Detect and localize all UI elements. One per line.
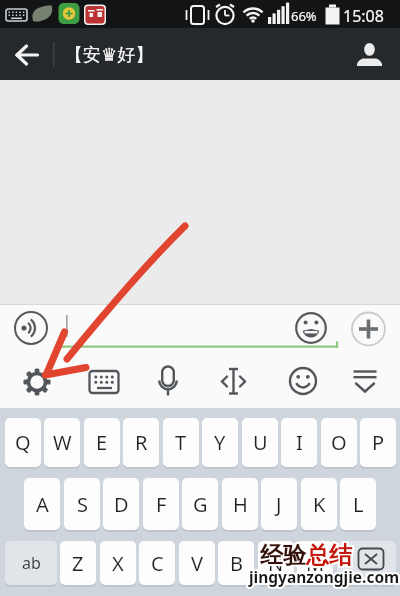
button[interactable]: E [84, 418, 120, 467]
button[interactable] [294, 310, 330, 348]
button[interactable]: N [258, 541, 294, 585]
button[interactable] [6, 38, 42, 74]
staticText: 66% [291, 7, 317, 25]
button[interactable]: F [143, 478, 179, 530]
button[interactable]: X [100, 541, 136, 585]
button[interactable]: D [103, 478, 139, 530]
button[interactable]: M [297, 541, 333, 585]
staticText: Q [15, 429, 31, 456]
staticText: Y [214, 429, 226, 456]
staticText: J [276, 491, 282, 518]
staticText: G [193, 491, 208, 518]
button[interactable] [337, 541, 396, 585]
button[interactable]: Q [5, 418, 41, 467]
button[interactable]: H [222, 478, 258, 530]
button[interactable]: ab [5, 541, 57, 585]
staticText: E [96, 429, 108, 456]
button[interactable]: P [360, 418, 396, 467]
staticText: 经验总结 [260, 541, 352, 570]
staticText: V [191, 550, 203, 577]
staticText: 经验 [260, 541, 306, 570]
button[interactable] [150, 364, 186, 400]
staticText: M [306, 550, 325, 577]
button[interactable] [215, 364, 251, 400]
staticText: A [36, 491, 49, 518]
button[interactable]: C [139, 541, 175, 585]
staticText: O [331, 429, 347, 456]
staticText: C [151, 550, 164, 577]
staticText: H [233, 491, 248, 518]
staticText: W [53, 429, 72, 456]
staticText: U [253, 429, 268, 456]
staticText: K [313, 491, 326, 518]
staticText: R [135, 429, 148, 456]
button[interactable] [86, 364, 122, 400]
button[interactable]: G [182, 478, 218, 530]
staticText: F [156, 491, 167, 518]
button[interactable]: B [218, 541, 254, 585]
button[interactable] [350, 38, 392, 74]
button[interactable] [12, 310, 50, 348]
staticText: ab [22, 552, 41, 574]
staticText: jingyanzongjie.com [249, 566, 400, 587]
staticText: X [112, 550, 124, 577]
staticText: T [175, 429, 187, 456]
staticText: N [268, 550, 284, 577]
staticText: I [296, 429, 303, 456]
button[interactable] [347, 364, 383, 400]
staticText: 【安♛好】 [65, 44, 154, 67]
button[interactable]: K [301, 478, 337, 530]
button[interactable]: Y [202, 418, 238, 467]
staticText: 总结 [306, 541, 352, 570]
staticText: L [353, 491, 364, 518]
staticText: D [114, 491, 129, 518]
button[interactable]: I [281, 418, 317, 467]
staticText: Z [72, 550, 84, 577]
button[interactable] [350, 310, 388, 348]
staticText: S [77, 491, 88, 518]
staticText: P [372, 429, 385, 456]
staticText: 15:08 [343, 5, 384, 27]
button[interactable]: J [261, 478, 297, 530]
staticText: B [230, 550, 243, 577]
button[interactable]: A [24, 478, 60, 530]
button[interactable]: R [123, 418, 159, 467]
button[interactable]: S [64, 478, 100, 530]
button[interactable] [285, 364, 321, 400]
button[interactable]: L [340, 478, 376, 530]
button[interactable]: V [179, 541, 215, 585]
button[interactable]: Z [60, 541, 96, 585]
button[interactable]: T [163, 418, 199, 467]
button[interactable]: U [242, 418, 278, 467]
button[interactable]: O [321, 418, 357, 467]
button[interactable]: W [44, 418, 80, 467]
staticText: jingyanzongjie.com [249, 566, 400, 587]
button[interactable] [20, 364, 56, 400]
